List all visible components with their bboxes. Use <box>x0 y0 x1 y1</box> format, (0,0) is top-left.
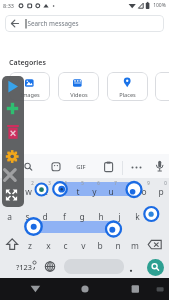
staticText: x <box>46 240 51 251</box>
button[interactable] <box>25 280 46 298</box>
button[interactable] <box>107 72 148 101</box>
staticText: n <box>115 240 121 251</box>
staticText: 9 <box>147 180 150 186</box>
staticText: f <box>63 211 66 222</box>
staticText: b <box>97 240 103 251</box>
button[interactable] <box>150 156 169 177</box>
staticText: 8 <box>131 180 134 186</box>
staticText: c <box>63 240 68 251</box>
staticText: Images <box>20 91 40 99</box>
button[interactable] <box>40 257 60 275</box>
staticText: 5 <box>81 180 84 186</box>
staticText: v <box>81 240 86 251</box>
staticText: l <box>155 211 158 222</box>
button[interactable] <box>124 156 144 177</box>
button[interactable] <box>155 72 169 101</box>
staticText: k <box>135 211 140 222</box>
staticText: 4 <box>64 180 67 186</box>
staticText: w <box>25 186 32 197</box>
staticText: 100% <box>153 2 166 9</box>
button[interactable] <box>2 171 23 188</box>
staticText: r <box>59 186 63 197</box>
button[interactable] <box>64 259 124 274</box>
button[interactable] <box>46 156 66 177</box>
staticText: z <box>28 240 32 251</box>
staticText: 2 <box>31 180 34 186</box>
button[interactable] <box>146 234 166 254</box>
staticText: g <box>79 211 85 222</box>
staticText: ?123 <box>16 262 32 272</box>
staticText: q <box>8 186 14 197</box>
button[interactable] <box>21 156 41 177</box>
button[interactable] <box>58 72 99 101</box>
button[interactable] <box>9 72 50 101</box>
staticText: Videos <box>70 91 88 99</box>
button[interactable] <box>125 280 146 298</box>
staticText: Search messages <box>27 19 79 28</box>
button[interactable] <box>147 259 164 276</box>
button[interactable] <box>3 234 23 254</box>
staticText: t <box>76 186 80 197</box>
staticText: j <box>118 211 121 222</box>
staticText: h <box>98 211 104 222</box>
staticText: 6 <box>97 180 100 186</box>
button[interactable] <box>125 257 139 275</box>
staticText: e <box>43 186 48 197</box>
staticText: 3 <box>48 180 51 186</box>
button[interactable] <box>74 280 95 298</box>
button[interactable] <box>2 152 23 169</box>
staticText: 7 <box>114 180 117 186</box>
button[interactable] <box>2 128 23 145</box>
staticText: GIF <box>76 163 86 171</box>
staticText: i <box>127 186 130 197</box>
button[interactable] <box>96 156 116 177</box>
button[interactable] <box>2 82 23 99</box>
staticText: m <box>131 240 139 251</box>
button[interactable] <box>10 257 36 275</box>
staticText: 1 <box>14 180 17 186</box>
staticText: 8:33 <box>3 2 14 9</box>
button[interactable] <box>5 15 164 32</box>
button[interactable] <box>2 194 23 211</box>
staticText: 0 <box>164 180 167 186</box>
staticText: u <box>108 186 114 197</box>
staticText: Categories <box>9 58 46 67</box>
button[interactable] <box>2 105 23 122</box>
staticText: d <box>42 211 48 222</box>
button[interactable] <box>71 156 91 177</box>
staticText: Places <box>119 91 136 99</box>
staticText: s <box>25 211 30 222</box>
staticText: o <box>141 186 147 197</box>
staticText: p <box>158 186 164 197</box>
staticText: a <box>7 211 12 222</box>
staticText: y <box>92 186 97 197</box>
